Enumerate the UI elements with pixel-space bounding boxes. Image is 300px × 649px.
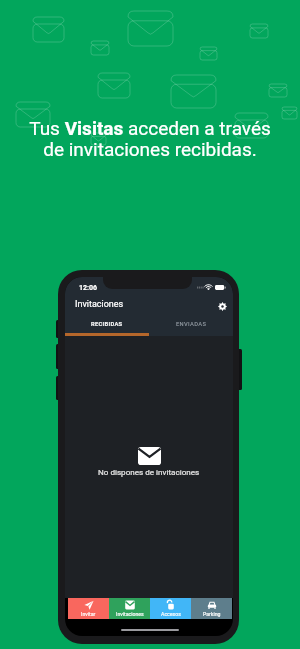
staticText: Accesos (161, 611, 181, 617)
staticText: Invitar (81, 611, 96, 617)
button[interactable]: Invitaciones (109, 598, 150, 619)
staticText: ENVIADAS (176, 321, 207, 328)
staticText: 12:06 (79, 284, 98, 292)
staticText: RECIBIDAS (91, 321, 123, 328)
button[interactable]: ENVIADAS (149, 316, 233, 333)
button[interactable]: Settings (214, 297, 230, 313)
staticText: Invitaciones (116, 611, 144, 617)
button[interactable]: Parking (191, 598, 232, 619)
staticText: Parking (203, 611, 221, 617)
button[interactable]: Accesos (150, 598, 191, 619)
staticText: No dispones de invitaciones (98, 467, 200, 476)
staticText: Tus Visitas acceden a través de invitaci… (29, 117, 271, 161)
button[interactable]: Invitar (68, 598, 109, 619)
staticText: Invitaciones (75, 299, 124, 310)
button[interactable]: RECIBIDAS (65, 316, 149, 333)
